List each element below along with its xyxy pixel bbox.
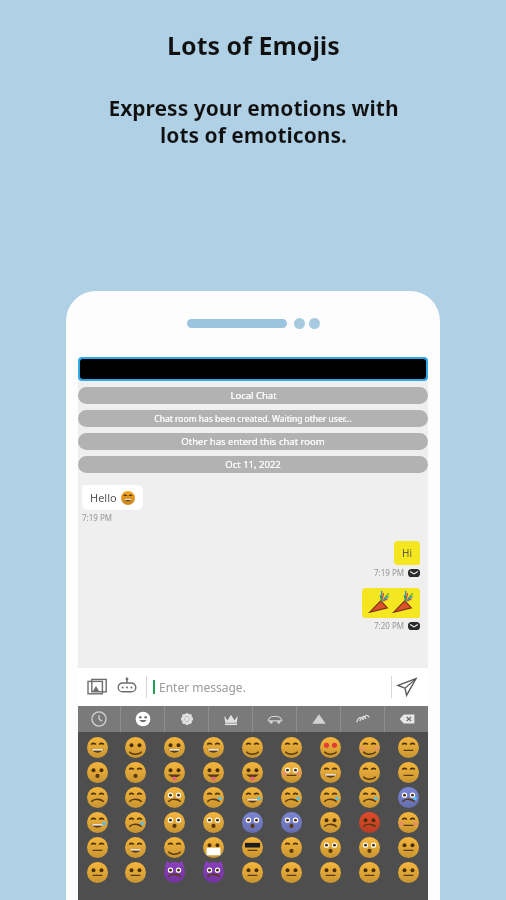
button[interactable]: Emoji: [78, 835, 116, 860]
staticText: Enter message.: [159, 679, 391, 695]
button[interactable]: Travel: [253, 706, 296, 732]
button[interactable]: Send: [392, 672, 422, 702]
button[interactable]: Chat room has been created. Waiting othe…: [78, 410, 428, 427]
button[interactable]: Hello: [90, 490, 135, 505]
button[interactable]: Emoji: [116, 835, 155, 860]
button[interactable]: Emoji: [233, 785, 272, 810]
staticText: Lots of Emojis: [167, 28, 340, 62]
button[interactable]: Emoji: [350, 785, 389, 810]
button[interactable]: Symbols: [297, 706, 340, 732]
button[interactable]: Emoji: [311, 860, 350, 885]
button[interactable]: Emoji: [389, 810, 428, 835]
staticText: Chat room has been created. Waiting othe…: [154, 413, 352, 425]
button[interactable]: Emoji: [194, 785, 233, 810]
button[interactable]: Hi: [402, 546, 412, 560]
button[interactable]: Recent: [78, 706, 120, 732]
button[interactable]: Emoji: [78, 760, 116, 785]
button[interactable]: Attach image: [84, 674, 110, 700]
button[interactable]: Backspace: [385, 706, 428, 732]
button[interactable]: Emoji: [389, 735, 428, 760]
button[interactable]: Emoji: [194, 735, 233, 760]
button[interactable]: Emoji: [78, 860, 116, 885]
staticText: 7:20 PM: [374, 620, 405, 631]
button[interactable]: Emoji: [155, 835, 194, 860]
button[interactable]: Emoji: [233, 735, 272, 760]
button[interactable]: Emoji: [350, 810, 389, 835]
button[interactable]: Emoji: [389, 785, 428, 810]
button[interactable]: Emoji: [311, 735, 350, 760]
button[interactable]: Emoji: [233, 760, 272, 785]
button[interactable]: Emoji: [311, 810, 350, 835]
button[interactable]: Emoji: [350, 760, 389, 785]
button[interactable]: Sticker: [114, 674, 140, 700]
button[interactable]: Emoji: [272, 760, 311, 785]
button[interactable]: Emoji: [311, 835, 350, 860]
button[interactable]: Emoji: [155, 760, 194, 785]
button[interactable]: Emoji: [78, 785, 116, 810]
button[interactable]: Emoji: [194, 835, 233, 860]
button[interactable]: Emoji: [116, 760, 155, 785]
button[interactable]: Emoji: [155, 810, 194, 835]
button[interactable]: Emoji: [194, 760, 233, 785]
button[interactable]: Emoji: [272, 810, 311, 835]
button[interactable]: Emoji: [233, 860, 272, 885]
button[interactable]: Emoji: [311, 785, 350, 810]
button[interactable]: Nature: [165, 706, 208, 732]
button[interactable]: Emoji: [272, 860, 311, 885]
button[interactable]: Objects: [209, 706, 252, 732]
button[interactable]: Emoji: [389, 835, 428, 860]
staticText: Other has enterd this chat room: [181, 435, 325, 448]
button[interactable]: Emoji: [272, 735, 311, 760]
button[interactable]: Emoji: [311, 760, 350, 785]
button[interactable]: Smileys: [121, 706, 164, 732]
button[interactable]: Emoji: [350, 860, 389, 885]
button[interactable]: Emoji: [233, 810, 272, 835]
button[interactable]: Emoji: [155, 785, 194, 810]
button[interactable]: Emoji: [350, 735, 389, 760]
button[interactable]: Emoji: [350, 835, 389, 860]
button[interactable]: Emoji: [155, 860, 194, 885]
button[interactable]: Emoji: [233, 835, 272, 860]
button[interactable]: Emoji: [116, 810, 155, 835]
button[interactable]: Emoji: [116, 860, 155, 885]
staticText: Hello: [90, 490, 117, 505]
staticText: Express your emotions with lots of emoti…: [108, 94, 399, 149]
button[interactable]: Oct 11, 2022: [78, 456, 428, 473]
button[interactable]: Emoji: [389, 860, 428, 885]
button[interactable]: Emoji: [155, 735, 194, 760]
button[interactable]: Emoji: [272, 785, 311, 810]
staticText: Local Chat: [230, 389, 277, 402]
staticText: 7:19 PM: [82, 512, 113, 523]
button[interactable]: Emoji: [389, 760, 428, 785]
button[interactable]: Emoji: [116, 735, 155, 760]
button[interactable]: Other has enterd this chat room: [78, 433, 428, 450]
button[interactable]: Emoji: [194, 860, 233, 885]
staticText: Oct 11, 2022: [225, 458, 281, 471]
staticText: 7:19 PM: [374, 567, 405, 578]
button[interactable]: Emoji: [78, 735, 116, 760]
staticText: Hi: [402, 546, 412, 560]
button[interactable]: Emoji: [78, 810, 116, 835]
button[interactable]: Emoji: [272, 835, 311, 860]
button[interactable]: Local Chat: [78, 387, 428, 404]
button[interactable]: Special: [341, 706, 384, 732]
button[interactable]: [368, 592, 414, 614]
button[interactable]: Emoji: [116, 785, 155, 810]
button[interactable]: Emoji: [194, 810, 233, 835]
